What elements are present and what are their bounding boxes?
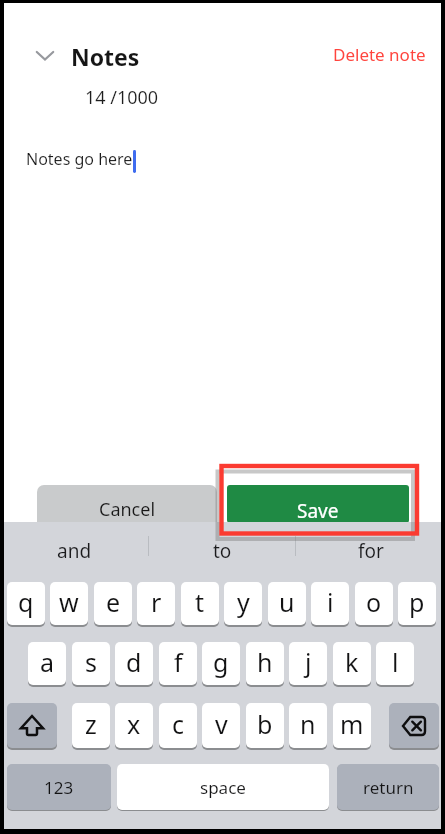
button[interactable] (37, 485, 217, 522)
staticText: c (172, 707, 185, 741)
staticText: q (18, 585, 34, 619)
staticText: to (213, 538, 232, 564)
staticText: space (200, 776, 246, 799)
button[interactable]: i (311, 582, 349, 625)
button[interactable] (7, 703, 57, 748)
staticText: Save (297, 498, 339, 523)
staticText: h (257, 645, 273, 679)
button[interactable]: q (7, 582, 45, 625)
staticText: x (127, 707, 141, 741)
staticText: u (279, 585, 295, 619)
button[interactable]: 123 (7, 764, 111, 810)
staticText: return (363, 776, 414, 799)
button[interactable]: l (376, 642, 414, 685)
button[interactable]: o (355, 582, 393, 625)
staticText: g (213, 645, 229, 679)
button[interactable]: x (115, 703, 153, 748)
button[interactable]: h (246, 642, 284, 685)
button[interactable]: Notes go here (26, 144, 186, 174)
button[interactable]: j (289, 642, 327, 685)
button[interactable]: n (289, 703, 327, 748)
staticText: s (85, 645, 97, 679)
button[interactable]: f (159, 642, 197, 685)
button[interactable]: to (148, 530, 296, 572)
staticText: i (327, 585, 334, 619)
button[interactable]: c (159, 703, 197, 748)
button[interactable]: w (50, 582, 88, 625)
staticText: b (257, 707, 273, 741)
staticText: r (151, 585, 162, 619)
button[interactable]: u (268, 582, 306, 625)
staticText: Notes go here (26, 148, 133, 170)
staticText: n (300, 707, 316, 741)
staticText: t (195, 585, 205, 619)
button[interactable]: e (94, 582, 132, 625)
button[interactable]: p (398, 582, 436, 625)
staticText: for (358, 538, 384, 564)
button[interactable]: k (333, 642, 371, 685)
button[interactable]: s (72, 642, 110, 685)
button[interactable]: r (137, 582, 175, 625)
staticText: o (366, 585, 382, 619)
button[interactable]: t (181, 582, 219, 625)
staticText: Notes (71, 41, 140, 71)
button[interactable]: b (246, 703, 284, 748)
staticText: f (174, 645, 183, 679)
staticText: Cancel (99, 497, 156, 522)
button[interactable]: Delete note (315, 39, 426, 69)
staticText: Delete note (333, 43, 426, 66)
staticText: v (215, 707, 228, 741)
button[interactable]: d (115, 642, 153, 685)
staticText: e (106, 585, 121, 619)
button[interactable] (227, 485, 409, 523)
staticText: 123 (44, 776, 74, 799)
staticText: and (57, 538, 92, 564)
button[interactable] (389, 703, 439, 748)
button[interactable]: m (333, 703, 371, 748)
button[interactable]: return (337, 764, 439, 810)
staticText: z (85, 707, 97, 741)
button[interactable]: g (202, 642, 240, 685)
button[interactable]: z (72, 703, 110, 748)
staticText: m (340, 707, 364, 741)
button[interactable] (30, 44, 60, 68)
button[interactable]: space (117, 764, 329, 810)
button[interactable]: y (224, 582, 262, 625)
button[interactable]: and (0, 530, 148, 572)
staticText: j (305, 645, 312, 679)
button[interactable]: a (28, 642, 66, 685)
staticText: w (59, 585, 79, 619)
staticText: a (40, 645, 55, 679)
staticText: 14 /1000 (85, 85, 159, 110)
button[interactable]: v (202, 703, 240, 748)
staticText: d (126, 645, 142, 679)
staticText: y (237, 585, 250, 619)
button[interactable]: for (297, 530, 445, 572)
staticText: p (409, 585, 425, 619)
staticText: l (392, 645, 399, 679)
staticText: k (345, 645, 359, 679)
